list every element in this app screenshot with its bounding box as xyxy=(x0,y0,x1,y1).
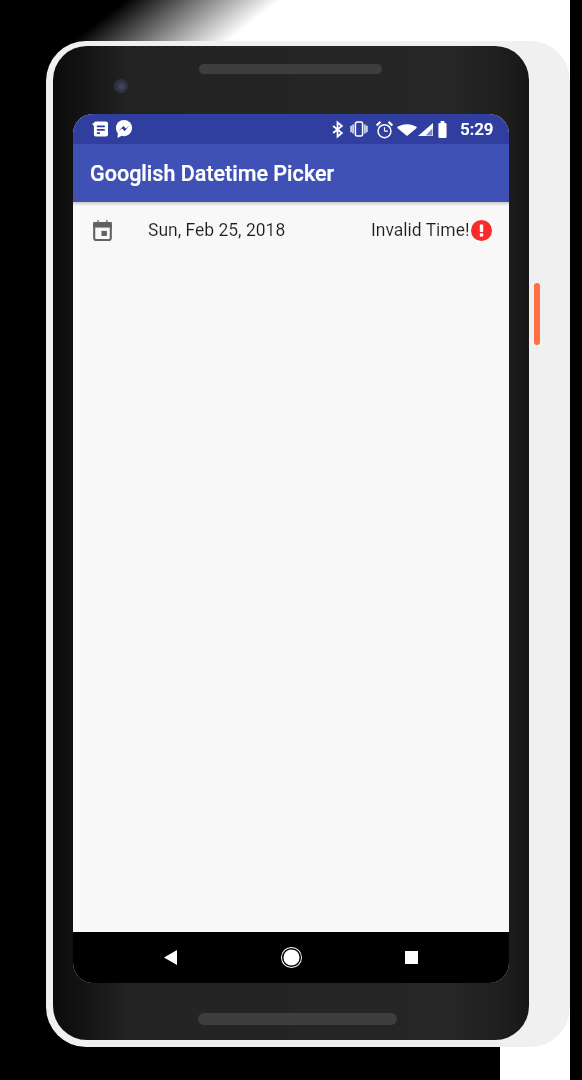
staticText: Googlish Datetime Picker xyxy=(90,161,334,186)
button[interactable]: Home xyxy=(255,932,327,983)
staticText: Sun, Feb 25, 2018 xyxy=(148,220,286,241)
staticText: 5:29 xyxy=(460,119,494,139)
button[interactable]: Back xyxy=(134,932,206,983)
button[interactable]: Sun, Feb 25, 2018 xyxy=(73,202,509,259)
button[interactable]: Recent apps xyxy=(375,932,447,983)
staticText: Invalid Time! xyxy=(371,220,470,241)
